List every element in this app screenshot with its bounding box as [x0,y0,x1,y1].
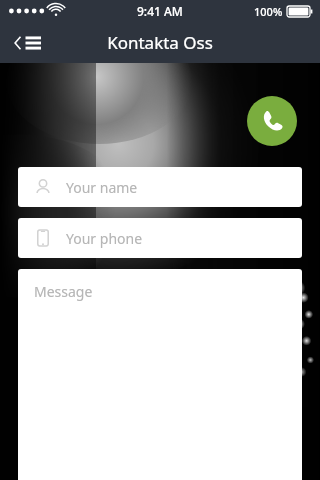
staticText: Your phone [66,229,143,248]
button[interactable]: Your phone [18,218,302,258]
button[interactable]: Call [247,96,297,146]
staticText: Kontakta Oss [107,31,213,54]
staticText: Message [34,282,93,301]
button[interactable]: Message [18,269,302,480]
staticText: 100% [254,4,283,19]
button[interactable]: Menu [6,22,52,63]
staticText: 9:41 AM [137,3,183,19]
staticText: Your name [66,178,138,197]
button[interactable]: Your name [18,167,302,207]
